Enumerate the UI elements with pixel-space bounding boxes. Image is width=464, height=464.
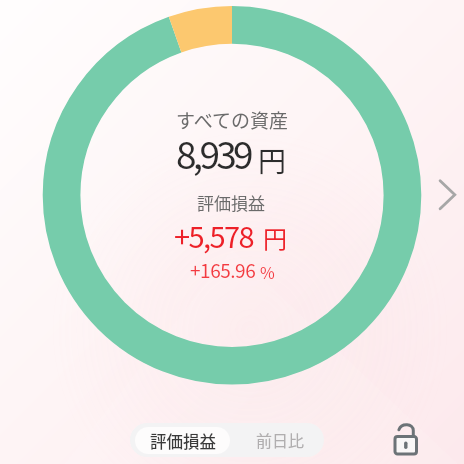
staticText: 円: [263, 220, 287, 255]
staticText: 評価損益: [197, 190, 265, 215]
button[interactable]: Next: [430, 172, 464, 208]
staticText: 8,939: [176, 126, 250, 180]
staticText: %: [260, 260, 275, 283]
button[interactable]: 前日比: [236, 427, 324, 454]
button[interactable]: 評価損益: [135, 427, 230, 454]
staticText: すべての資産: [176, 106, 288, 134]
staticText: +5,578: [174, 214, 253, 256]
staticText: 前日比: [256, 428, 305, 451]
staticText: 円: [258, 140, 287, 181]
button[interactable]: Unlock: [388, 420, 424, 456]
staticText: 評価損益: [150, 429, 216, 453]
staticText: +165.96: [190, 256, 256, 284]
